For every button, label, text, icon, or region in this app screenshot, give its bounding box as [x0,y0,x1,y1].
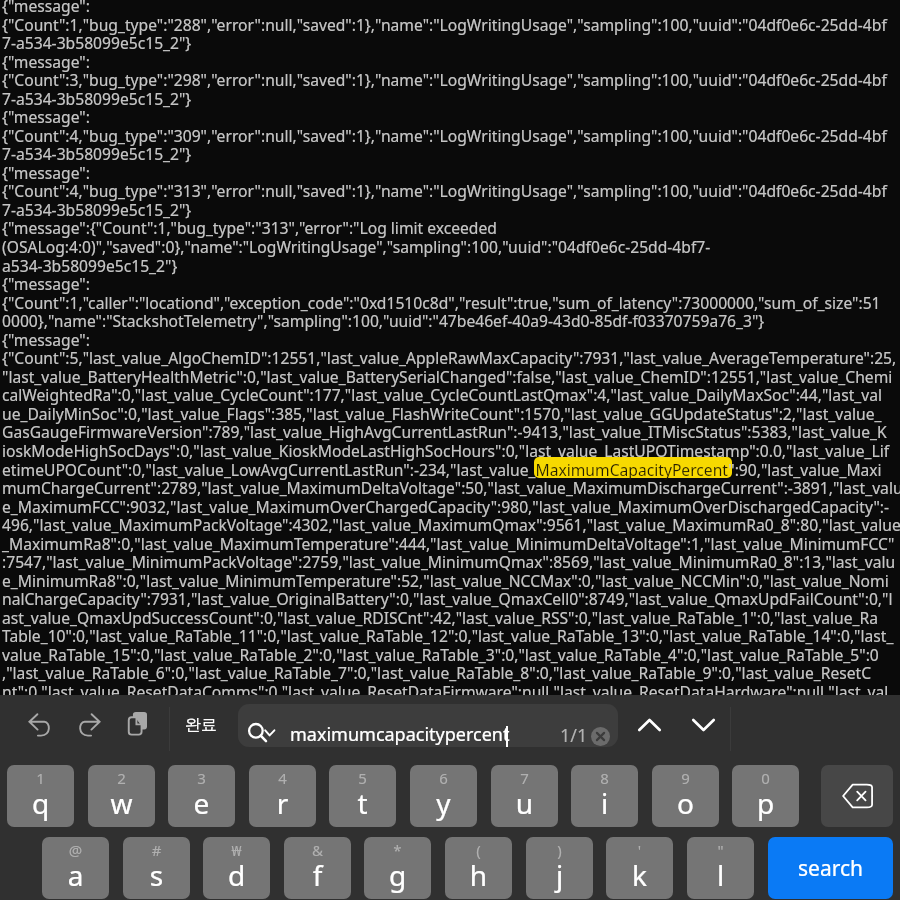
staticText: e_MinimumRa8":0,"last_value_MinimumTempe… [2,570,889,591]
staticText: r [249,784,316,822]
staticText: h [445,856,512,894]
staticText: ₩ [203,840,270,860]
staticText: e [168,784,235,822]
staticText: 4 [249,768,316,788]
staticText: 1 [7,768,74,788]
button[interactable]: " [687,837,754,899]
button[interactable]: 8 [571,765,638,827]
staticText: {"message": [2,162,90,183]
staticText: o [652,784,719,822]
staticText: d [203,856,270,894]
staticText: {"message": [2,0,90,16]
staticText: Table_10":0,"last_value_RaTable_11":0,"l… [2,625,894,646]
button[interactable]: Paste [105,695,173,763]
staticText: q [7,784,74,822]
staticText: 7-a534-3b58099e5c15_2"} [2,32,192,53]
staticText: nalChargeCapacity":7931,"last_value_Orig… [2,588,893,609]
button[interactable]: Redo [55,695,123,763]
staticText: search [798,854,863,883]
staticText: {"message":{"Count":1,"bug_type":"313","… [2,217,497,238]
staticText: f [284,856,351,894]
button[interactable]: 2 [88,765,155,827]
staticText: etimeUPOCount":0,"last_value_LowAvgCurre… [2,459,882,480]
staticText: i [571,784,638,822]
staticText: {"Count":5,"last_value_AlgoChemID":12551… [2,347,897,368]
staticText: _MaximumRa8":0,"last_value_MaximumTemper… [2,533,895,554]
staticText: ,"last_value_RaTable_6":0,"last_value_Ra… [2,662,872,683]
button[interactable]: Backspace [821,765,893,827]
staticText: 완료 [185,715,217,735]
staticText: l [687,856,754,894]
staticText: {"Count":4,"bug_type":"309","error":null… [2,125,887,146]
button[interactable]: 3 [168,765,235,827]
staticText: {"Count":1,"bug_type":"288","error":null… [2,14,887,35]
staticText: 0 [732,768,799,788]
staticText: calWeightedRa":0,"last_value_CycleCount"… [2,384,882,405]
button[interactable]: Clear search [591,727,610,746]
staticText: w [88,784,155,822]
staticText: 7-a534-3b58099e5c15_2"} [2,199,192,220]
staticText: 7-a534-3b58099e5c15_2"} [2,143,192,164]
staticText: {"message": [2,273,90,294]
button[interactable]: maximumcapacitypercent [238,704,618,747]
staticText: a [42,856,109,894]
staticText: {"message": [2,106,90,127]
staticText: # [123,840,190,860]
staticText: 7 [491,768,558,788]
button[interactable]: @ [42,837,109,899]
staticText: ) [526,840,593,860]
staticText: 8 [571,768,638,788]
staticText: "last_value_BatteryHealthMetric":0,"last… [2,366,893,387]
button[interactable]: search [768,837,893,899]
staticText: 9 [652,768,719,788]
staticText: mumChargeCurrent":2789,"last_value_Maxim… [2,477,900,498]
button[interactable]: 1 [7,765,74,827]
button[interactable]: Next result [669,695,737,763]
staticText: u [491,784,558,822]
staticText: :7547,"last_value_MinimumPackVoltage":27… [2,551,896,572]
staticText: e_MaximumFCC":9032,"last_value_MaximumOv… [2,496,890,517]
staticText: {"Count":3,"bug_type":"298","error":null… [2,69,887,90]
staticText: s [123,856,190,894]
button[interactable]: 6 [410,765,477,827]
button[interactable]: 9 [652,765,719,827]
button[interactable]: 5 [329,765,396,827]
button[interactable]: & [284,837,351,899]
staticText: {"message": [2,51,90,72]
staticText: " [687,840,754,860]
staticText: 496,"last_value_MaximumPackVoltage":4302… [2,514,900,535]
button[interactable]: ' [606,837,673,899]
button[interactable]: 완료 [171,695,231,763]
staticText: GasGaugeFirmwareVersion":789,"last_value… [2,421,887,442]
staticText: 7-a534-3b58099e5c15_2"} [2,88,192,109]
staticText: 2 [88,768,155,788]
staticText: ast_value_QmaxUpdSuccessCount":0,"last_v… [2,607,878,628]
staticText: ( [445,840,512,860]
button[interactable]: 7 [491,765,558,827]
button[interactable]: ) [526,837,593,899]
staticText: g [364,856,431,894]
staticText: j [526,856,593,894]
staticText: k [606,856,673,894]
staticText: y [410,784,477,822]
staticText: ioskModeHighSocDays":0,"last_value_Kiosk… [2,440,890,461]
button[interactable]: * [364,837,431,899]
button[interactable]: Previous result [615,695,683,763]
button[interactable]: 4 [249,765,316,827]
staticText: & [284,840,351,860]
staticText: (OSALog:4:0)","saved":0},"name":"LogWrit… [2,236,711,257]
button[interactable]: 0 [732,765,799,827]
staticText: * [364,840,431,860]
staticText: t [329,784,396,822]
staticText: @ [42,840,109,860]
staticText: 3 [168,768,235,788]
staticText: 0000},"name":"StackshotTelemetry","sampl… [2,310,765,331]
button[interactable]: ( [445,837,512,899]
staticText: maximumcapacitypercent [290,722,510,747]
button[interactable]: Undo [5,695,73,763]
staticText: {"Count":4,"bug_type":"313","error":null… [2,180,887,201]
button[interactable]: # [123,837,190,899]
staticText: {"message": [2,329,90,350]
button[interactable]: ₩ [203,837,270,899]
staticText: nt":0,"last_value_ResetDataComms":0,"las… [2,681,889,702]
